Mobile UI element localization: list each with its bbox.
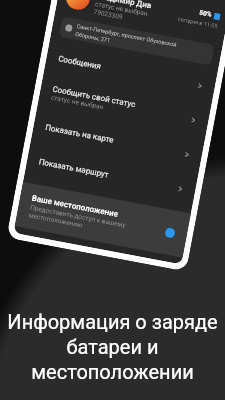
staticText: Информация о заряде батареи и местополож… bbox=[7, 310, 218, 384]
staticText: Владимир Див bbox=[96, 0, 153, 10]
staticText: Показать на карте bbox=[45, 123, 115, 145]
button[interactable]: Сообщить свой статус bbox=[37, 74, 211, 140]
button[interactable]: Ваше местоположение bbox=[15, 182, 191, 258]
staticText: Ваше местоположение bbox=[31, 194, 119, 219]
button[interactable]: Показать маршрут bbox=[24, 142, 198, 208]
button[interactable]: Показать на карте bbox=[30, 108, 205, 174]
staticText: Сообщения bbox=[58, 54, 102, 71]
staticText: Сообщить свой статус bbox=[52, 85, 137, 109]
staticText: статус не выбран bbox=[50, 93, 105, 111]
button[interactable]: Сообщения bbox=[43, 39, 218, 105]
staticText: сегодня в 11:55 bbox=[177, 16, 219, 29]
button[interactable]: Санкт-Петербург, проспект Обуховской Обо… bbox=[58, 16, 215, 65]
staticText: 50% bbox=[199, 9, 213, 19]
staticText: Показать маршрут bbox=[38, 157, 109, 179]
other: Toggle location bbox=[164, 227, 176, 239]
staticText: 79023309 bbox=[93, 8, 124, 21]
staticText: статус не выбран bbox=[94, 0, 149, 18]
staticText: Предоставить доступ к вашему местоположе… bbox=[28, 204, 126, 237]
staticText: Санкт-Петербург, проспект Обуховской Обо… bbox=[75, 23, 178, 56]
